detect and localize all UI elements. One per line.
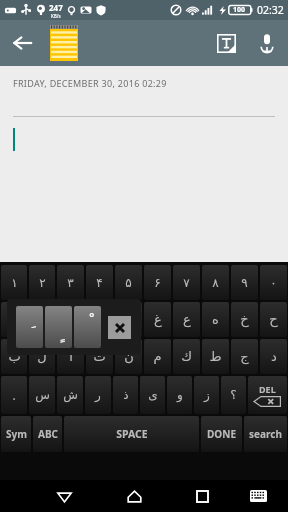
button[interactable]: ِ [16, 306, 43, 348]
button[interactable]: Switch keyboard [240, 480, 276, 512]
button[interactable]: و [167, 376, 192, 414]
button[interactable]: . [1, 376, 27, 414]
staticText: search [249, 427, 282, 441]
staticText: ظ [8, 312, 21, 327]
button[interactable]: ذ [113, 376, 138, 414]
button[interactable]: س [29, 376, 55, 414]
staticText: 100 [233, 5, 246, 15]
button[interactable]: ب [1, 339, 27, 374]
button[interactable]: ح [260, 302, 287, 337]
button[interactable]: ٠ [260, 265, 287, 300]
staticText: ز [204, 388, 210, 402]
button[interactable]: خ [231, 302, 258, 337]
staticText: ع [183, 312, 191, 327]
staticText: ر [96, 312, 103, 327]
staticText: ABC [38, 427, 58, 441]
staticText: ۵ [125, 276, 132, 290]
staticText: ط [36, 312, 49, 327]
button[interactable]: ز [57, 302, 84, 337]
button[interactable]: ل [29, 339, 55, 374]
staticText: . [12, 387, 16, 403]
button[interactable]: ت [86, 339, 113, 374]
button[interactable]: Voice input [246, 20, 288, 66]
staticText: 02:32 [257, 3, 284, 17]
staticText: DEL [259, 383, 276, 395]
staticText: ۹ [241, 276, 248, 290]
staticText: FRIDAY, DECEMBER 30, 2016 02:29 [13, 77, 167, 89]
button[interactable]: Home [116, 480, 152, 512]
staticText: ر [95, 388, 101, 402]
button[interactable]: ۴ [86, 265, 113, 300]
button[interactable]: SPACE [64, 416, 199, 452]
button[interactable]: ۳ [57, 265, 84, 300]
button[interactable]: ه [202, 302, 229, 337]
staticText: ه [212, 312, 219, 327]
staticText: ؟ [230, 388, 237, 402]
staticText: ج [240, 349, 249, 364]
button[interactable]: ۵ [115, 265, 142, 300]
button[interactable]: ط [202, 339, 229, 374]
button[interactable]: ظ [1, 302, 27, 337]
staticText: ۸ [212, 276, 219, 290]
staticText: SPACE [116, 427, 148, 441]
button[interactable]: د [260, 339, 287, 374]
button[interactable]: غ [144, 302, 171, 337]
button[interactable]: ۶ [144, 265, 171, 300]
staticText: و [177, 388, 183, 402]
staticText: ا [69, 349, 73, 364]
button[interactable]: Recent apps [184, 480, 220, 512]
staticText: ط [209, 349, 222, 364]
button[interactable]: Notepad [49, 25, 79, 61]
staticText: س [35, 388, 50, 402]
staticText: ت [93, 349, 106, 364]
button[interactable]: ذ [115, 302, 142, 337]
button[interactable]: ْ [74, 306, 101, 348]
button[interactable]: Close [108, 316, 131, 339]
button[interactable]: ۱ [1, 265, 27, 300]
button[interactable]: Sym [1, 416, 31, 452]
button[interactable]: ع [173, 302, 200, 337]
button[interactable]: ر [86, 302, 113, 337]
button[interactable]: ا [57, 339, 84, 374]
button[interactable]: ج [231, 339, 258, 374]
button[interactable]: ش [57, 376, 83, 414]
button[interactable]: search [244, 416, 287, 452]
button[interactable]: Back [47, 480, 82, 512]
button[interactable]: ى [140, 376, 165, 414]
button[interactable]: ٍ [45, 306, 72, 348]
staticText: ح [269, 312, 278, 327]
button[interactable]: ABC [33, 416, 62, 452]
staticText: ذ [123, 388, 129, 402]
staticText: د [271, 349, 277, 364]
staticText: ى [148, 388, 158, 402]
button[interactable]: ؟ [221, 376, 246, 414]
staticText: ٠ [270, 276, 277, 290]
staticText: ذ [126, 312, 132, 327]
button[interactable]: م [144, 339, 171, 374]
button[interactable]: Back [0, 20, 46, 66]
button[interactable]: ۸ [202, 265, 229, 300]
button[interactable]: Text format [206, 20, 246, 66]
staticText: ك [181, 349, 192, 364]
button[interactable]: ر [85, 376, 111, 414]
staticText: ش [63, 388, 78, 402]
button[interactable]: ۲ [29, 265, 55, 300]
button[interactable]: ۷ [173, 265, 200, 300]
button[interactable]: ك [173, 339, 200, 374]
staticText: ۴ [96, 276, 103, 290]
button[interactable]: ۹ [231, 265, 258, 300]
staticText: ۲ [39, 276, 46, 290]
staticText: م [153, 349, 162, 364]
button[interactable]: DEL [248, 376, 287, 414]
button[interactable]: ن [115, 339, 142, 374]
button[interactable]: DONE [201, 416, 242, 452]
staticText: KB/s [51, 13, 61, 19]
button[interactable]: ز [194, 376, 219, 414]
staticText: ۶ [154, 276, 161, 290]
button[interactable]: ط [29, 302, 55, 337]
staticText: ب [8, 349, 21, 364]
staticText: DONE [207, 427, 236, 441]
staticText: ۳ [67, 276, 74, 290]
staticText: ۱ [11, 276, 18, 290]
staticText: ۷ [183, 276, 190, 290]
